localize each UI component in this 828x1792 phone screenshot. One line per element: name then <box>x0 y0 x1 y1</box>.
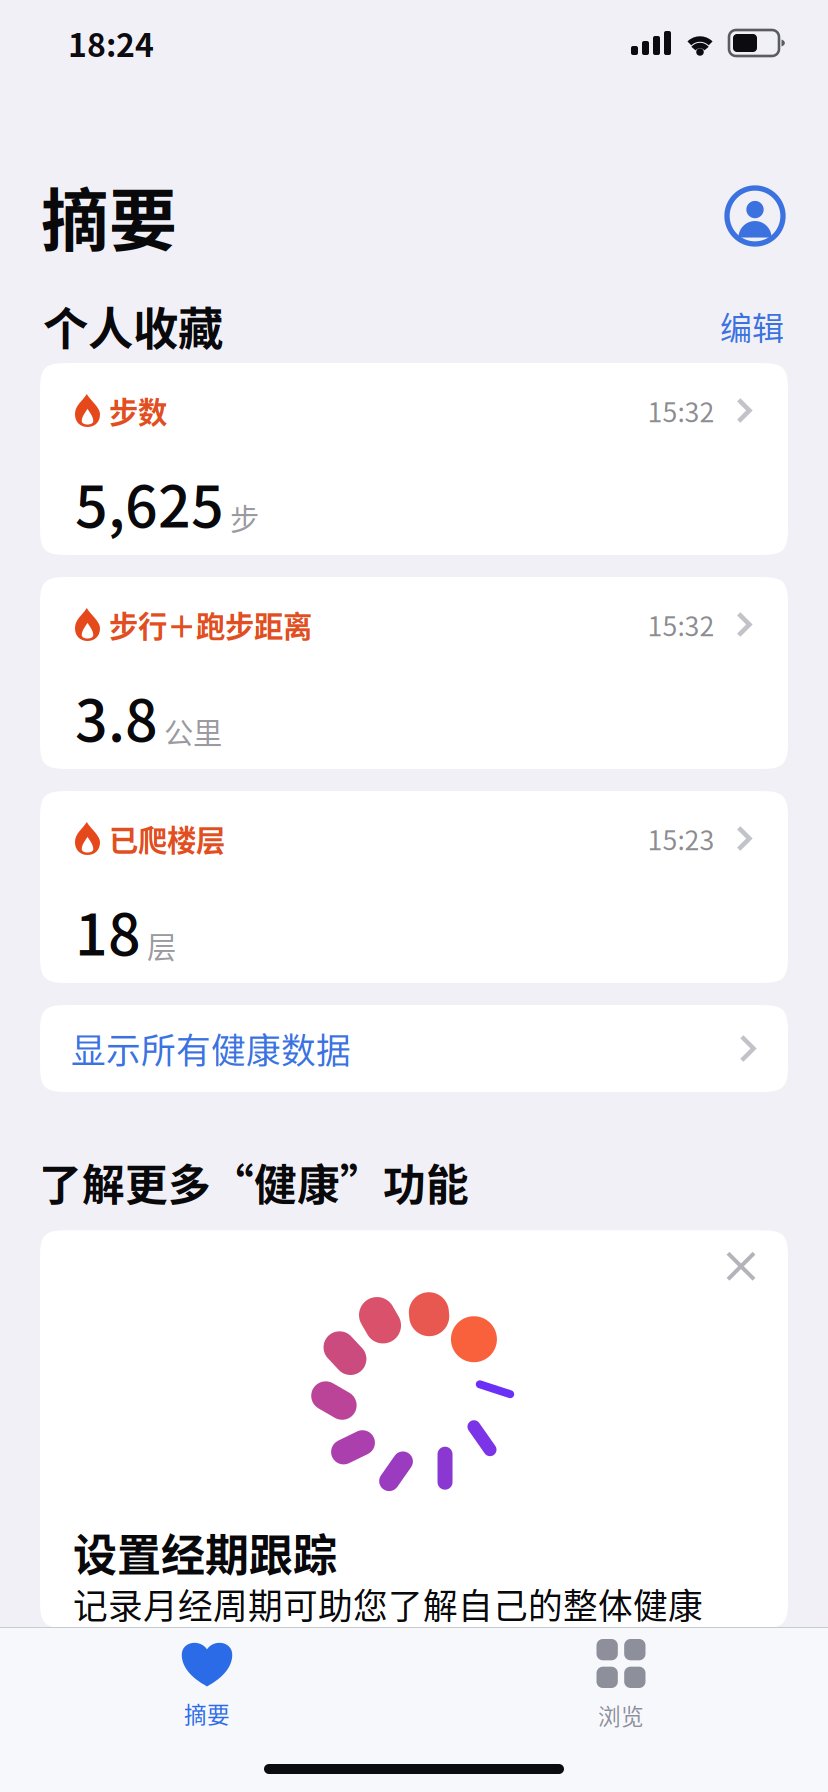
staticText: 5,625 <box>75 462 224 543</box>
staticText: 步 <box>230 497 259 538</box>
staticText: 摘要 <box>41 168 177 264</box>
staticText: 摘要 <box>184 1697 230 1729</box>
staticText: 18:24 <box>68 20 154 66</box>
staticText: 编辑 <box>720 303 784 349</box>
staticText: 浏览 <box>598 1699 644 1731</box>
staticText: 个人收藏 <box>43 294 223 358</box>
button[interactable]: 摘要 <box>0 1640 414 1729</box>
staticText: 18 <box>75 890 141 971</box>
staticText: 15:32 <box>647 606 714 643</box>
button[interactable]: 个人资料 <box>727 188 783 244</box>
button[interactable]: 关闭 <box>726 1251 756 1281</box>
staticText: 步行＋跑步距离 <box>109 604 312 645</box>
button[interactable]: 步行＋跑步距离 <box>40 577 788 769</box>
staticText: 3.8 <box>75 676 158 757</box>
button[interactable]: 已爬楼层 <box>40 791 788 983</box>
staticText: 步数 <box>109 390 167 431</box>
button[interactable]: 浏览 <box>414 1639 828 1731</box>
staticText: 记录月经周期可助您了解自己的整体健康 <box>73 1579 703 1628</box>
staticText: 15:32 <box>647 392 714 429</box>
staticText: 设置经期跟踪 <box>73 1521 337 1583</box>
button[interactable]: 编辑 <box>720 303 784 349</box>
button[interactable]: 步数 <box>40 363 788 555</box>
staticText: 显示所有健康数据 <box>71 1024 351 1073</box>
staticText: 15:23 <box>647 820 714 857</box>
staticText: 已爬楼层 <box>109 818 225 859</box>
staticText: 了解更多“健康”功能 <box>39 1152 469 1212</box>
staticText: 层 <box>147 925 176 966</box>
staticText: 公里 <box>164 711 222 752</box>
button[interactable]: 显示所有健康数据 <box>40 1005 788 1092</box>
